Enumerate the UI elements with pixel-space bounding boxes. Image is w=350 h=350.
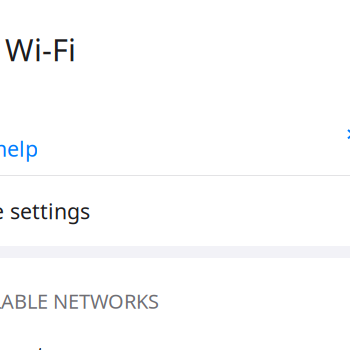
staticText: More settings (0, 197, 90, 225)
button[interactable]: More settings (0, 176, 350, 246)
button[interactable]: Get help (0, 122, 350, 175)
button[interactable]: tower (37, 340, 157, 350)
staticText: Get help (0, 134, 38, 163)
staticText: AVAILABLE NETWORKS (0, 288, 159, 314)
staticText: Wi-Fi (5, 29, 76, 70)
staticText: tower (37, 340, 95, 350)
